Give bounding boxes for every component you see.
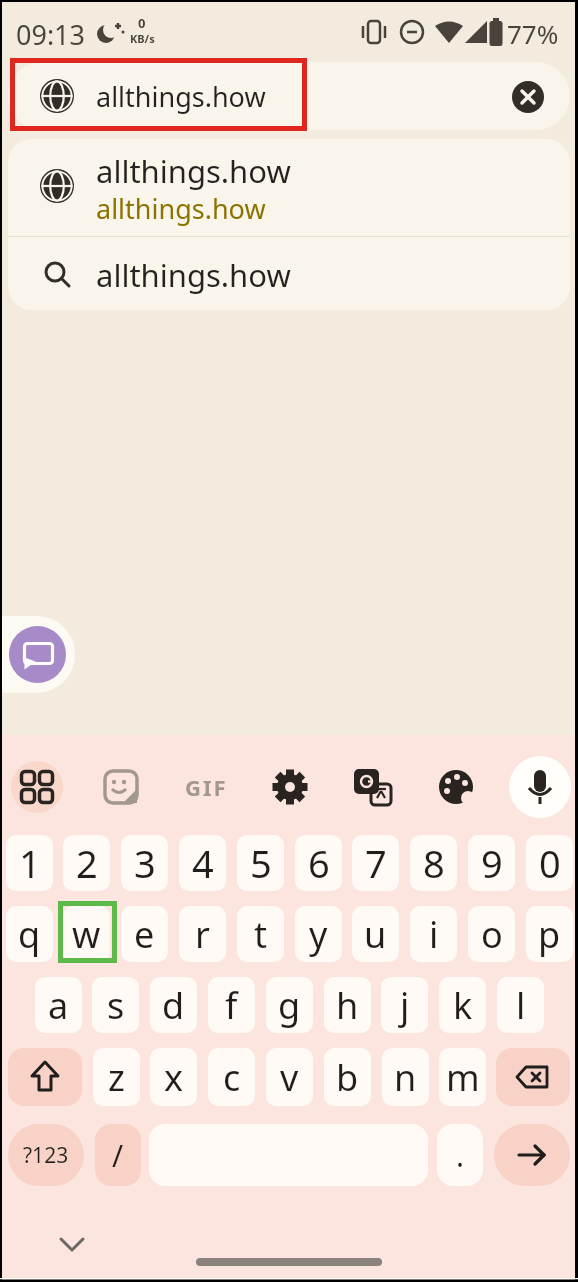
staticText: t [254, 910, 267, 959]
button[interactable]: 3 [121, 835, 168, 891]
button[interactable]: y [295, 906, 342, 962]
staticText: x [164, 1053, 184, 1102]
button[interactable] [496, 1048, 570, 1106]
button[interactable]: 9 [468, 835, 515, 891]
staticText: 0 [138, 14, 146, 32]
staticText: 3 [134, 837, 156, 889]
staticText: e [134, 910, 155, 959]
staticText: allthings.how [96, 78, 266, 115]
button[interactable] [269, 766, 311, 808]
button[interactable]: c [208, 1048, 255, 1106]
button[interactable]: t [237, 906, 284, 962]
button[interactable]: w [63, 906, 110, 962]
button[interactable] [8, 62, 570, 130]
staticText: ?123 [23, 1141, 69, 1170]
staticText: 77% [507, 16, 559, 48]
button[interactable]: u [352, 906, 399, 962]
button[interactable]: j [381, 977, 428, 1033]
button[interactable] [8, 139, 570, 236]
button[interactable] [8, 237, 570, 310]
staticText: c [223, 1053, 241, 1102]
button[interactable]: e [121, 906, 168, 962]
staticText: 2 [76, 837, 98, 889]
button[interactable]: d [150, 977, 197, 1033]
button[interactable] [0, 616, 75, 693]
button[interactable]: 6 [295, 835, 342, 891]
staticText: 4 [192, 837, 214, 889]
button[interactable]: r [179, 906, 226, 962]
staticText: GIF [185, 772, 228, 802]
staticText: 8 [423, 837, 445, 889]
staticText: 5 [250, 837, 272, 889]
staticText: allthings.how [96, 254, 291, 294]
button[interactable] [494, 1124, 570, 1186]
button[interactable]: o [468, 906, 515, 962]
staticText: / [112, 1135, 124, 1176]
staticText: h [336, 981, 359, 1030]
button[interactable]: a [35, 977, 82, 1033]
button[interactable]: p [526, 906, 573, 962]
staticText: w [72, 910, 101, 959]
staticText: f [225, 981, 238, 1030]
button[interactable]: 8 [410, 835, 457, 891]
staticText: n [394, 1053, 417, 1102]
button[interactable] [9, 626, 66, 683]
button[interactable]: z [93, 1048, 140, 1106]
button[interactable]: ?123 [8, 1124, 84, 1186]
button[interactable]: s [92, 977, 139, 1033]
button[interactable]: h [324, 977, 371, 1033]
button[interactable]: b [324, 1048, 371, 1106]
button[interactable]: 0 [526, 835, 573, 891]
staticText: allthings.how [96, 150, 291, 190]
staticText: 7 [365, 837, 387, 889]
button[interactable]: v [266, 1048, 313, 1106]
staticText: z [108, 1053, 125, 1102]
staticText: KB/s [130, 31, 155, 46]
button[interactable]: f [208, 977, 255, 1033]
button[interactable] [511, 80, 545, 114]
staticText: . [456, 1135, 465, 1176]
staticText: y [309, 910, 328, 959]
button[interactable] [11, 761, 63, 813]
staticText: a [48, 981, 69, 1030]
staticText: p [538, 910, 561, 959]
button[interactable]: i [410, 906, 457, 962]
button[interactable] [101, 767, 141, 807]
staticText: v [280, 1053, 299, 1102]
button[interactable] [351, 766, 393, 808]
staticText: 6 [308, 837, 330, 889]
button[interactable]: 5 [237, 835, 284, 891]
button[interactable]: GIF [176, 767, 236, 807]
button[interactable]: 4 [179, 835, 226, 891]
staticText: 9 [481, 837, 503, 889]
staticText: 1 [19, 837, 41, 889]
button[interactable]: x [150, 1048, 197, 1106]
button[interactable]: / [95, 1124, 141, 1186]
button[interactable]: q [6, 906, 53, 962]
button[interactable] [8, 1048, 82, 1106]
button[interactable]: l [497, 977, 544, 1033]
staticText: 09:13 [16, 16, 86, 48]
staticText: m [446, 1053, 480, 1102]
button[interactable]: 7 [352, 835, 399, 891]
staticText: j [400, 981, 410, 1030]
button[interactable]: 2 [63, 835, 110, 891]
staticText: o [481, 910, 503, 959]
button[interactable]: allthings.how [96, 150, 496, 190]
button[interactable]: m [439, 1048, 486, 1106]
staticText: g [278, 981, 301, 1030]
staticText: b [336, 1053, 359, 1102]
staticText: r [195, 910, 210, 959]
button[interactable] [52, 1230, 92, 1258]
button[interactable]: allthings.how [96, 254, 496, 294]
button[interactable]: 1 [6, 835, 53, 891]
button[interactable]: g [266, 977, 313, 1033]
button[interactable] [509, 756, 571, 818]
button[interactable] [435, 766, 477, 808]
button[interactable]: . [437, 1124, 483, 1186]
staticText: s [107, 981, 125, 1030]
button[interactable]: k [439, 977, 486, 1033]
button[interactable]: n [382, 1048, 429, 1106]
staticText: u [364, 910, 387, 959]
